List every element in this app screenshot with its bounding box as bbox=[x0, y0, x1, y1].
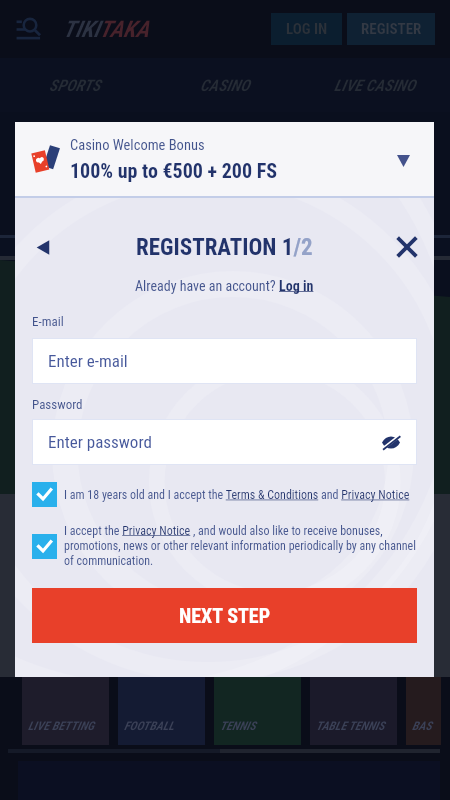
staticText: LOG IN bbox=[286, 20, 328, 38]
button[interactable]: REGISTER bbox=[347, 13, 435, 45]
button[interactable]: Enter e-mail bbox=[32, 338, 417, 384]
staticText: BAS bbox=[412, 719, 432, 733]
staticText: TIKITAKA bbox=[63, 16, 149, 43]
staticText: NEXT STEP bbox=[179, 604, 271, 627]
staticText: Enter password bbox=[48, 432, 152, 452]
button[interactable]: NEXT STEP bbox=[32, 588, 417, 643]
button[interactable]: Close bbox=[391, 231, 423, 263]
button[interactable]: Back bbox=[27, 231, 59, 263]
staticText: Enter e-mail bbox=[48, 351, 128, 371]
button[interactable]: FOOTBALL bbox=[118, 677, 205, 745]
staticText: FOOTBALL bbox=[124, 719, 175, 733]
button[interactable]: TENNIS bbox=[214, 677, 301, 745]
staticText: Already have an account? bbox=[135, 278, 279, 294]
button[interactable]: LOG IN bbox=[271, 13, 342, 45]
button[interactable]: BAS bbox=[406, 677, 441, 745]
button[interactable]: Accept bbox=[32, 534, 57, 559]
staticText: Password bbox=[32, 397, 83, 412]
button[interactable]: TABLE TENNIS bbox=[310, 677, 397, 745]
staticText: SPORTS bbox=[49, 76, 101, 95]
button[interactable]: Log in bbox=[279, 278, 314, 294]
staticText: E-mail bbox=[32, 314, 64, 329]
staticText: Casino Welcome Bonus bbox=[70, 137, 205, 154]
button[interactable]: LIVE BETTING bbox=[22, 677, 109, 745]
staticText: LIVE CASINO bbox=[334, 76, 416, 95]
button[interactable]: Expand bonus bbox=[386, 142, 420, 176]
staticText: LIVE BETTING bbox=[28, 719, 95, 733]
staticText: TENNIS bbox=[220, 719, 256, 733]
button[interactable]: Enter password bbox=[32, 419, 417, 465]
button[interactable]: Accept bbox=[32, 482, 57, 507]
staticText: REGISTER bbox=[361, 20, 422, 38]
staticText: 100% up to €500 + 200 FS bbox=[70, 159, 277, 182]
button[interactable]: CASINO bbox=[150, 58, 300, 112]
button[interactable]: Show password bbox=[378, 429, 404, 455]
button[interactable]: Search menu bbox=[16, 17, 44, 41]
button[interactable]: Casino Welcome Bonus bbox=[15, 122, 434, 196]
staticText: I am 18 years old and I accept the Terms… bbox=[64, 488, 410, 502]
staticText: CASINO bbox=[200, 76, 250, 95]
staticText: REGISTRATION 1/2 bbox=[136, 234, 313, 261]
staticText: TABLE TENNIS bbox=[316, 719, 385, 733]
staticText: I accept the Privacy Notice , and would … bbox=[64, 524, 421, 568]
button[interactable]: SPORTS bbox=[0, 58, 150, 112]
button[interactable]: LIVE CASINO bbox=[300, 58, 450, 112]
